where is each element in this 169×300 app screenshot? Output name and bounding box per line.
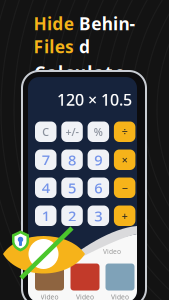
staticText: % [94, 125, 103, 139]
button[interactable]: % [88, 121, 109, 142]
staticText: Behind [79, 12, 135, 58]
staticText: Calculator [34, 61, 135, 84]
staticText: 6 [94, 178, 102, 197]
staticText: Video [40, 292, 58, 300]
staticText: C [42, 125, 49, 139]
staticText: 9 [94, 150, 102, 169]
button[interactable]: + [114, 205, 135, 226]
staticText: ÷ [122, 125, 128, 139]
button[interactable]: +/- [61, 121, 83, 142]
button[interactable]: × [114, 149, 135, 170]
staticText: 120 × 10.5 [57, 89, 132, 110]
staticText: × [122, 153, 128, 167]
staticText: 2 [68, 206, 76, 225]
button[interactable]: ÷ [114, 121, 135, 142]
button[interactable]: 8 [61, 149, 83, 170]
staticText: 3 [94, 206, 102, 225]
staticText: 8 [68, 150, 76, 169]
staticText: Video [76, 292, 94, 300]
staticText: Video [111, 292, 129, 300]
staticText: Video [103, 247, 121, 256]
button[interactable]: 7 [35, 149, 56, 170]
staticText: 4 [42, 178, 50, 197]
button[interactable]: 5 [61, 177, 83, 198]
staticText: +/- [65, 125, 78, 139]
button[interactable]: 4 [35, 177, 56, 198]
staticText: + [122, 209, 128, 223]
staticText: − [122, 181, 128, 195]
staticText: 1 [42, 206, 50, 225]
staticText: 7 [42, 150, 50, 169]
button[interactable]: 1 [35, 205, 56, 226]
staticText: Hide Files [34, 12, 74, 58]
button[interactable]: 3 [88, 205, 109, 226]
button[interactable]: C [35, 121, 56, 142]
staticText: 5 [68, 178, 76, 197]
button[interactable]: − [114, 177, 135, 198]
button[interactable]: 6 [88, 177, 109, 198]
button[interactable]: 2 [61, 205, 83, 226]
button[interactable]: 9 [88, 149, 109, 170]
